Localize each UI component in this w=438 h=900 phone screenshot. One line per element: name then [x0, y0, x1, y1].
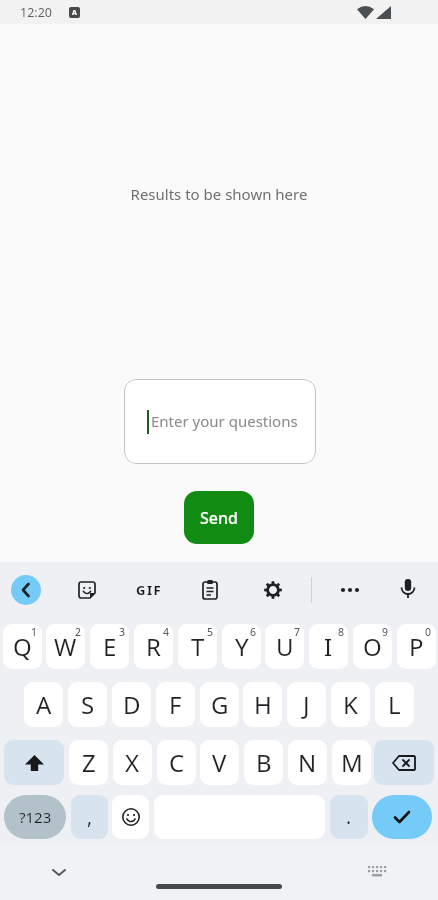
staticText: F [169, 688, 182, 721]
staticText: 3 [116, 625, 128, 642]
button[interactable]: X [113, 740, 152, 785]
staticText: 2 [72, 625, 84, 642]
staticText: Y [235, 630, 249, 663]
staticText: 4 [160, 625, 172, 642]
button[interactable]: Enter your questions [124, 379, 316, 464]
staticText: Z [82, 746, 96, 779]
button[interactable]: D [112, 682, 151, 727]
button[interactable]: R [134, 624, 173, 669]
button[interactable] [399, 577, 417, 603]
staticText: Enter your questions [151, 411, 298, 431]
staticText: 5 [204, 625, 216, 642]
staticText: P [409, 630, 424, 663]
button[interactable]: P [397, 624, 436, 669]
button[interactable] [76, 579, 98, 601]
staticText: 9 [379, 625, 391, 642]
staticText: Results to be shown here [0, 184, 438, 208]
button[interactable]: B [244, 740, 283, 785]
button[interactable]: , [71, 795, 108, 839]
staticText: . [346, 804, 352, 830]
button[interactable] [372, 795, 432, 839]
button[interactable]: . [330, 795, 368, 839]
staticText: M [341, 746, 363, 779]
button[interactable]: S [68, 682, 107, 727]
button[interactable] [45, 862, 73, 882]
button[interactable]: I [309, 624, 348, 669]
button[interactable] [11, 575, 41, 605]
staticText: 6 [247, 625, 259, 642]
button[interactable]: ?123 [4, 795, 66, 839]
button[interactable]: Z [69, 740, 108, 785]
button[interactable] [112, 795, 149, 839]
button[interactable]: W [46, 624, 85, 669]
button[interactable]: H [243, 682, 282, 727]
button[interactable]: F [156, 682, 195, 727]
button[interactable]: M [332, 740, 371, 785]
staticText: N [298, 746, 317, 779]
button[interactable] [262, 579, 284, 601]
staticText: ?123 [19, 807, 52, 827]
button[interactable] [374, 740, 434, 785]
staticText: I [324, 630, 333, 663]
staticText: Send [200, 507, 238, 529]
staticText: G [211, 688, 229, 721]
button[interactable]: Q [3, 624, 42, 669]
button[interactable] [156, 884, 282, 889]
staticText: T [191, 630, 205, 663]
button[interactable]: L [375, 682, 414, 727]
button[interactable]: O [353, 624, 392, 669]
staticText: GIF [136, 581, 163, 599]
staticText: A [72, 8, 77, 18]
staticText: V [212, 746, 227, 779]
staticText: L [388, 688, 401, 721]
staticText: 0 [422, 625, 434, 642]
button[interactable]: V [200, 740, 239, 785]
staticText: Q [13, 630, 32, 663]
button[interactable]: C [157, 740, 196, 785]
staticText: 8 [335, 625, 347, 642]
button[interactable]: E [90, 624, 129, 669]
staticText: R [146, 630, 161, 663]
staticText: J [303, 688, 310, 721]
staticText: 12:20 [20, 4, 64, 24]
button[interactable] [4, 740, 64, 785]
button[interactable]: GIF [132, 580, 166, 600]
button[interactable]: G [200, 682, 239, 727]
staticText: X [125, 746, 140, 779]
staticText: 7 [291, 625, 303, 642]
button[interactable]: A [24, 682, 63, 727]
button[interactable] [336, 580, 364, 600]
staticText: D [123, 688, 141, 721]
button[interactable]: Y [222, 624, 261, 669]
staticText: W [54, 630, 77, 663]
staticText: S [81, 688, 95, 721]
staticText: K [343, 688, 358, 721]
button[interactable] [200, 578, 220, 602]
staticText: 1 [28, 625, 40, 642]
button[interactable]: T [178, 624, 217, 669]
button[interactable]: K [331, 682, 370, 727]
button[interactable]: U [265, 624, 304, 669]
button[interactable]: Send [184, 491, 254, 544]
button[interactable]: J [287, 682, 326, 727]
staticText: H [254, 688, 272, 721]
staticText: U [276, 630, 294, 663]
staticText: A [36, 688, 52, 721]
staticText: O [363, 630, 382, 663]
button[interactable] [364, 862, 390, 882]
staticText: C [169, 746, 185, 779]
staticText: E [103, 630, 117, 663]
staticText: B [256, 746, 272, 779]
button[interactable]: N [288, 740, 327, 785]
staticText: , [87, 804, 93, 830]
